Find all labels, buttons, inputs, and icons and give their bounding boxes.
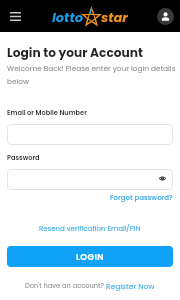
button[interactable]: LOGIN [7, 246, 173, 267]
button[interactable]: Menu [5, 6, 25, 26]
button[interactable]: Register Now [106, 281, 155, 291]
staticText: LOGIN [76, 251, 104, 263]
staticText: Welcome Back! Please enter your login de… [7, 63, 177, 86]
button[interactable]: Forgot password? [110, 193, 173, 203]
button[interactable]: Show password [157, 173, 168, 184]
staticText: star [101, 8, 128, 26]
staticText: Email or Mobile Number [7, 108, 87, 117]
button[interactable]: Account [157, 8, 174, 25]
staticText: lotto [52, 8, 83, 26]
button[interactable]: Resend verification Email/PIN [39, 224, 141, 234]
staticText: Don't have an account? [25, 281, 106, 290]
staticText: Login to your Account [7, 44, 143, 61]
staticText: Password [7, 153, 40, 162]
button[interactable] [7, 124, 173, 145]
button[interactable]: Show password [7, 169, 173, 190]
